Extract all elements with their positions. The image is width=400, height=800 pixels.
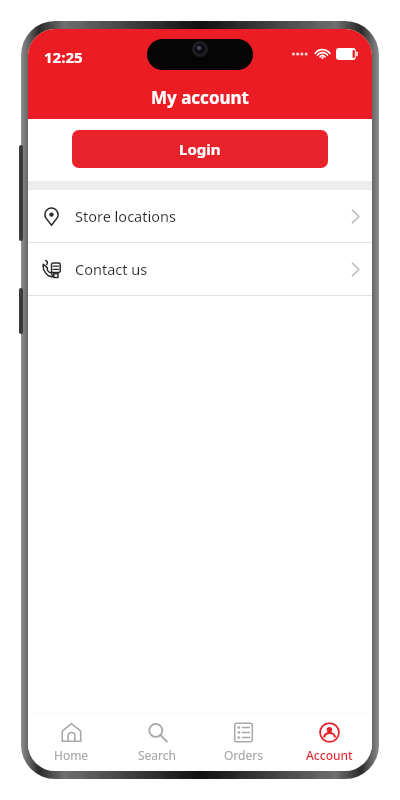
button[interactable]: Search [114, 713, 200, 771]
button[interactable]: Login [72, 130, 328, 168]
staticText: Home [54, 747, 89, 763]
button[interactable]: Store locations [28, 190, 372, 242]
staticText: Contact us [75, 259, 148, 279]
staticText: Search [138, 747, 176, 763]
staticText: 12:25 [44, 47, 83, 67]
staticText: Orders [224, 747, 263, 763]
staticText: Login [179, 139, 221, 159]
staticText: My account [151, 86, 249, 109]
staticText: Store locations [75, 206, 176, 226]
button[interactable]: Orders [200, 713, 286, 771]
staticText: Account [306, 747, 353, 763]
button[interactable]: Home [28, 713, 114, 771]
button[interactable]: Contact us [28, 243, 372, 295]
button[interactable]: Account [286, 713, 372, 771]
